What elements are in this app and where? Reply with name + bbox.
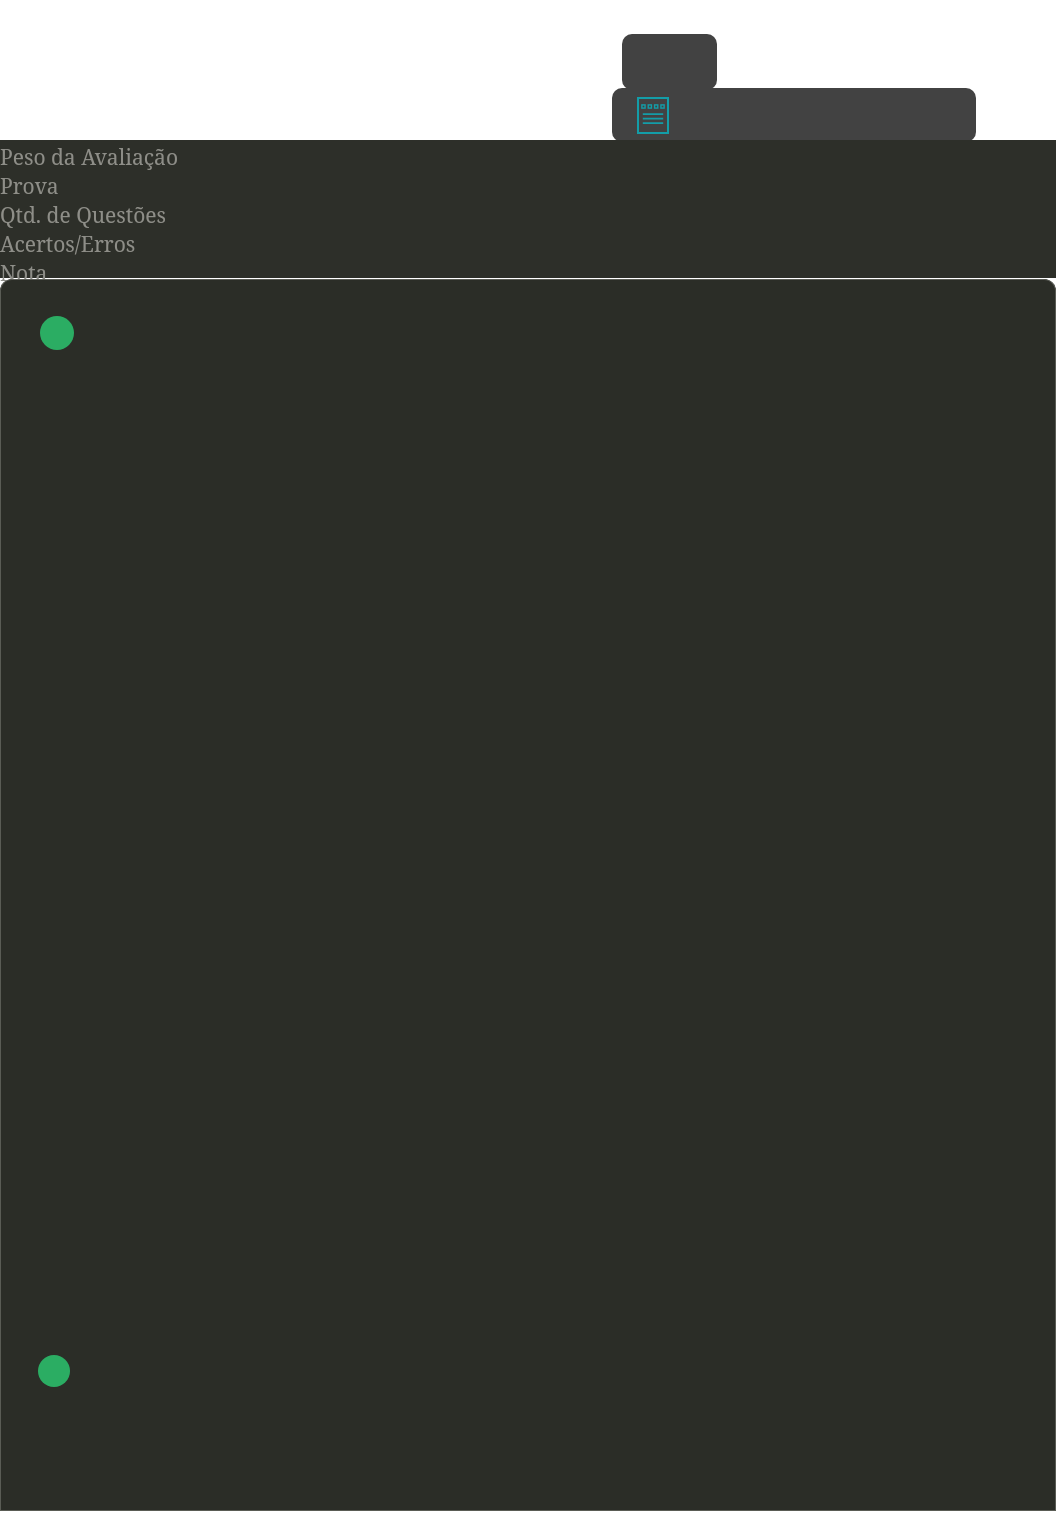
staticText: Prova [0,172,59,201]
button[interactable]: Status aprovado [38,1355,70,1387]
staticText: Acertos/Erros [0,230,136,259]
button[interactable] [622,34,717,90]
staticText: Nota [0,259,48,281]
button[interactable]: Status aprovado [40,316,74,350]
staticText: Peso da Avaliação [0,143,178,172]
button[interactable]: Relatório [636,97,670,135]
staticText: Qtd. de Questões [0,201,167,230]
